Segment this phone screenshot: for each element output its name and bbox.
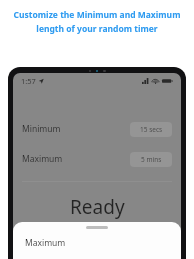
staticText: Customize the Minimum and Maximum — [12, 9, 182, 21]
button[interactable]: 15 secs — [130, 122, 172, 137]
button[interactable]: Minimum — [13, 119, 181, 139]
button[interactable]: 5 mins — [130, 152, 172, 167]
staticText: length of your random timer — [12, 23, 182, 35]
staticText: Ready — [70, 194, 125, 220]
staticText: Minimum — [22, 123, 61, 135]
staticText: Maximum — [25, 237, 66, 249]
staticText: 15 secs — [140, 125, 163, 134]
button[interactable]: Maximum — [13, 149, 181, 169]
staticText: Maximum — [22, 153, 63, 165]
button[interactable]: Drag handle — [13, 222, 181, 259]
staticText: 1:57 — [21, 76, 36, 86]
other: Drag handle — [86, 226, 108, 229]
staticText: 5 mins — [141, 155, 162, 164]
